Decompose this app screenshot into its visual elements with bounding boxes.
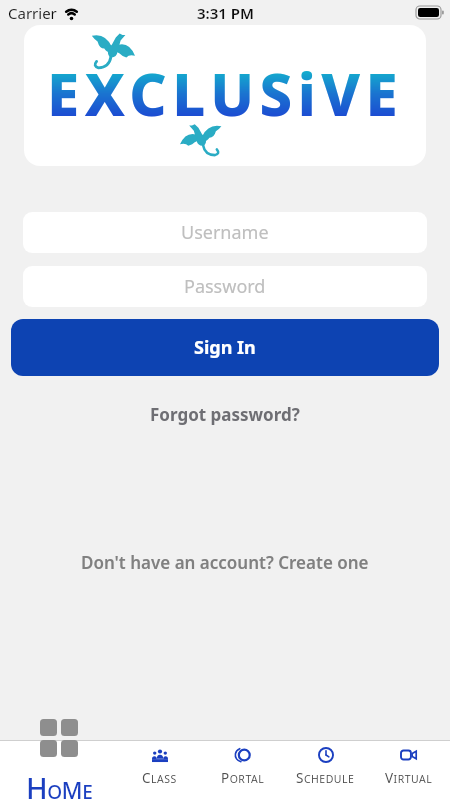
button[interactable]: HOME bbox=[0, 719, 118, 800]
button[interactable]: VIRTUAL bbox=[367, 719, 450, 800]
staticText: Sign In bbox=[194, 335, 256, 360]
staticText: VIRTUAL bbox=[385, 769, 433, 787]
button[interactable]: SCHEDULE bbox=[284, 719, 367, 800]
staticText: HOME bbox=[26, 768, 93, 800]
staticText: PORTAL bbox=[221, 769, 265, 787]
button[interactable]: Username bbox=[23, 212, 427, 253]
button[interactable]: Password bbox=[23, 266, 427, 307]
staticText: Password bbox=[184, 274, 266, 299]
staticText: EXCLUSiVE bbox=[47, 54, 404, 133]
staticText: Username bbox=[181, 220, 269, 245]
staticText: Carrier bbox=[8, 3, 57, 23]
button[interactable]: CLASS bbox=[118, 719, 201, 800]
staticText: SCHEDULE bbox=[296, 769, 355, 787]
button[interactable]: Forgot password? bbox=[150, 403, 300, 426]
button[interactable]: Sign In bbox=[11, 319, 439, 376]
staticText: 3:31 PM bbox=[197, 3, 254, 23]
button[interactable]: Don't have an account? Create one bbox=[81, 551, 369, 574]
button[interactable]: PORTAL bbox=[201, 719, 284, 800]
staticText: CLASS bbox=[142, 769, 177, 787]
